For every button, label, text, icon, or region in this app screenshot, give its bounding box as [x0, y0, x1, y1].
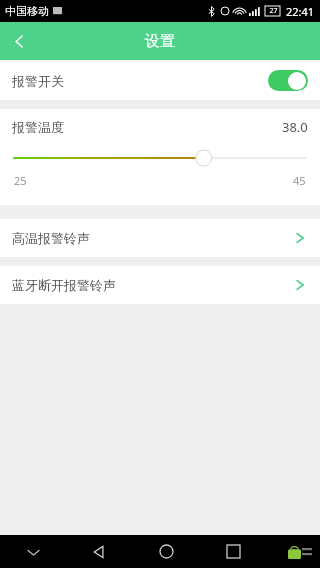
button[interactable]: Home	[149, 535, 183, 568]
staticText: 报警温度	[12, 119, 64, 135]
button[interactable]: Back	[0, 22, 38, 60]
staticText: 中国移动	[5, 4, 49, 18]
button[interactable]: 报警开关	[0, 61, 320, 100]
staticText: 22:41	[286, 4, 315, 19]
button[interactable]: App store	[283, 542, 317, 562]
button[interactable]: Alarm temperature slider	[0, 145, 320, 171]
button[interactable]: Alarm switch	[268, 70, 308, 91]
button[interactable]: 蓝牙断开报警铃声	[0, 266, 320, 304]
button[interactable]: Back	[82, 535, 116, 568]
button[interactable]: Hide	[18, 537, 48, 567]
staticText: 45	[293, 173, 306, 188]
staticText: 27	[269, 6, 278, 16]
other: Open 蓝牙断开报警铃声	[292, 277, 308, 293]
staticText: 设置	[145, 32, 175, 51]
staticText: 38.0	[282, 118, 308, 136]
staticText: 高温报警铃声	[12, 230, 90, 246]
other: Open 高温报警铃声	[292, 230, 308, 246]
staticText: 报警开关	[12, 73, 64, 89]
staticText: 蓝牙断开报警铃声	[12, 277, 116, 293]
button[interactable]: 高温报警铃声	[0, 219, 320, 257]
staticText: 25	[14, 173, 27, 188]
button[interactable]: Recents	[216, 535, 250, 568]
